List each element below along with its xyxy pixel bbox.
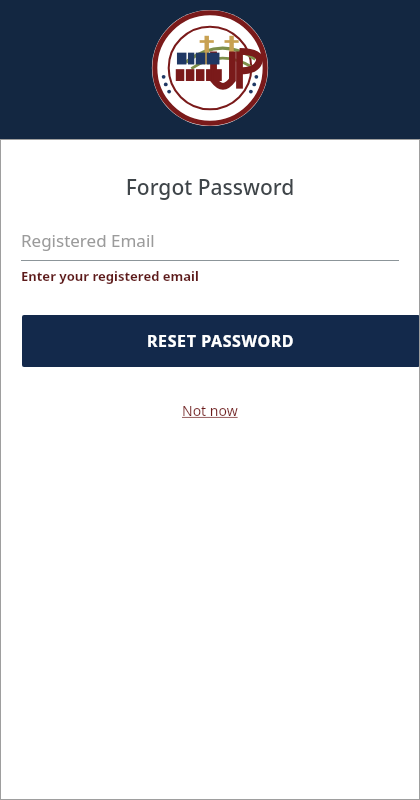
staticText: RESET PASSWORD (147, 330, 295, 352)
button[interactable]: Registered Email (21, 219, 399, 261)
button[interactable]: Not now (174, 398, 246, 423)
staticText: Forgot Password (0, 173, 420, 202)
button[interactable]: RESET PASSWORD (22, 315, 420, 367)
other: Exam Score Up logo (151, 9, 269, 127)
staticText: Registered Email (21, 229, 155, 252)
staticText: Not now (182, 401, 238, 420)
staticText: Enter your registered email (21, 267, 199, 285)
